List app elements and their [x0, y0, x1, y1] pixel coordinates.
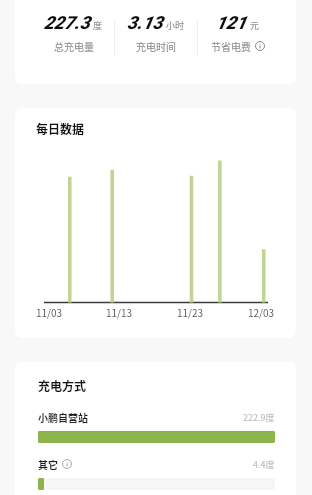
staticText: 11/13 — [106, 305, 133, 319]
staticText: 227.3 — [44, 12, 90, 33]
staticText: 小鹏自营站 — [38, 410, 88, 424]
staticText: 充电方式 — [38, 377, 87, 394]
staticText: 度 — [93, 19, 103, 32]
staticText: 12/03 — [248, 305, 275, 319]
button[interactable]: 121 — [197, 12, 279, 53]
other: More info — [255, 41, 265, 51]
button[interactable]: 小鹏自营站 — [38, 410, 275, 443]
staticText: 11/23 — [177, 305, 204, 319]
staticText: 4.4度 — [253, 458, 275, 471]
staticText: 节省电费 — [211, 39, 251, 53]
staticText: 小时 — [166, 19, 185, 32]
other: More info — [62, 459, 72, 469]
button[interactable]: 227.3 — [32, 12, 115, 53]
staticText: 充电时间 — [136, 39, 176, 53]
staticText: 3.13 — [127, 12, 163, 33]
staticText: 总充电量 — [54, 39, 94, 53]
staticText: 121 — [216, 12, 247, 33]
staticText: 元 — [250, 19, 260, 32]
button[interactable]: 其它 — [38, 457, 275, 490]
button[interactable]: 3.13 — [115, 12, 197, 53]
staticText: 其它 — [38, 457, 58, 471]
staticText: 11/03 — [36, 305, 63, 319]
staticText: 222.9度 — [243, 411, 275, 424]
staticText: 每日数据 — [36, 120, 85, 137]
